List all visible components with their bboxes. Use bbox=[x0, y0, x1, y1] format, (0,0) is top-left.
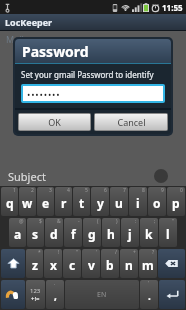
button[interactable]: " bbox=[63, 249, 81, 278]
staticText: +!= bbox=[31, 295, 40, 303]
button[interactable]: 123 bbox=[26, 280, 45, 309]
staticText: j bbox=[128, 226, 132, 242]
staticText: " bbox=[172, 218, 175, 225]
staticText: f bbox=[71, 226, 76, 242]
staticText: 1 bbox=[13, 187, 16, 194]
staticText: n bbox=[125, 257, 133, 273]
button[interactable]: Cancel bbox=[95, 114, 167, 130]
staticText: + bbox=[133, 249, 136, 256]
staticText: OK bbox=[48, 116, 61, 128]
button[interactable]: Enter bbox=[159, 280, 185, 309]
button[interactable]: + bbox=[120, 249, 138, 278]
staticText: LocKeeper bbox=[5, 16, 53, 28]
button[interactable]: 1 bbox=[1, 187, 18, 216]
button[interactable]: OK bbox=[19, 114, 90, 130]
button[interactable]: ( bbox=[83, 218, 101, 247]
staticText: 0 bbox=[180, 187, 183, 194]
button[interactable]: : bbox=[121, 218, 139, 247]
button[interactable]: 2 bbox=[19, 187, 36, 216]
staticText: @ bbox=[19, 218, 24, 225]
staticText: z bbox=[32, 257, 38, 273]
staticText: Mail bbox=[6, 33, 24, 45]
button[interactable]: $ bbox=[27, 218, 44, 247]
button[interactable]: 8 bbox=[129, 187, 147, 216]
staticText: a bbox=[14, 226, 22, 242]
staticText: 2 bbox=[31, 187, 34, 194]
staticText: , bbox=[54, 289, 57, 303]
staticText: . bbox=[148, 289, 151, 303]
staticText: v bbox=[88, 257, 95, 273]
staticText: ' bbox=[96, 249, 98, 256]
staticText: o bbox=[153, 195, 161, 211]
staticText: ) bbox=[116, 218, 118, 225]
button[interactable]: / bbox=[101, 249, 119, 278]
staticText: & bbox=[57, 218, 61, 225]
button[interactable]: 9 bbox=[148, 187, 166, 216]
staticText: : bbox=[135, 218, 137, 225]
button[interactable]: 5 bbox=[73, 187, 90, 216]
button[interactable]: ! bbox=[44, 249, 62, 278]
staticText: 8 bbox=[142, 187, 145, 194]
staticText: q bbox=[6, 195, 14, 211]
staticText: ? bbox=[152, 249, 155, 256]
staticText: Set your gmail Password to identify bbox=[21, 69, 154, 80]
staticText: EN bbox=[97, 290, 107, 300]
staticText: Subject bbox=[8, 169, 46, 184]
button[interactable]: . bbox=[46, 280, 64, 309]
staticText: 123 bbox=[30, 287, 41, 295]
staticText: l bbox=[166, 226, 170, 242]
staticText: 3 bbox=[49, 187, 52, 194]
button[interactable]: " bbox=[159, 218, 177, 247]
staticText: ' bbox=[148, 280, 150, 287]
button[interactable]: Swipe input bbox=[1, 280, 25, 309]
staticText: 6 bbox=[104, 187, 107, 194]
button[interactable]: 4 bbox=[55, 187, 72, 216]
staticText: " bbox=[76, 249, 79, 256]
staticText: 7 bbox=[123, 187, 126, 194]
button[interactable]: ? bbox=[139, 249, 157, 278]
staticText: - bbox=[78, 218, 80, 225]
button[interactable]: 0 bbox=[167, 187, 185, 216]
button[interactable]: Backspace bbox=[158, 249, 185, 278]
staticText: m bbox=[142, 257, 154, 273]
button[interactable]: •••••••• bbox=[23, 86, 163, 101]
button[interactable]: @ bbox=[9, 218, 26, 247]
staticText: x bbox=[50, 257, 57, 273]
staticText: 11:55 bbox=[162, 2, 183, 13]
staticText: y bbox=[97, 195, 104, 211]
staticText: Cancel bbox=[117, 116, 146, 128]
staticText: k bbox=[145, 226, 153, 242]
staticText: . bbox=[54, 280, 56, 287]
staticText: / bbox=[115, 249, 117, 256]
button[interactable]: ; bbox=[140, 218, 158, 247]
staticText: s bbox=[32, 226, 39, 242]
staticText: w bbox=[22, 195, 33, 211]
staticText: g bbox=[88, 226, 96, 242]
staticText: ( bbox=[97, 218, 99, 225]
staticText: b bbox=[106, 257, 114, 273]
button[interactable]: Space bbox=[65, 280, 139, 309]
staticText: Password bbox=[22, 42, 89, 61]
staticText: e bbox=[42, 195, 50, 211]
staticText: * bbox=[38, 249, 41, 256]
staticText: ; bbox=[154, 218, 156, 225]
button[interactable]: - bbox=[64, 218, 82, 247]
staticText: p bbox=[172, 195, 180, 211]
staticText: c bbox=[69, 257, 76, 273]
button[interactable]: 3 bbox=[37, 187, 54, 216]
button[interactable]: & bbox=[45, 218, 63, 247]
staticText: u bbox=[115, 195, 123, 211]
button[interactable]: ' bbox=[82, 249, 100, 278]
button[interactable]: ) bbox=[102, 218, 120, 247]
button[interactable]: ' bbox=[140, 280, 158, 309]
staticText: t bbox=[79, 195, 85, 211]
staticText: 4 bbox=[67, 187, 70, 194]
button[interactable]: Shift bbox=[1, 249, 25, 278]
staticText: 9 bbox=[161, 187, 164, 194]
button[interactable]: * bbox=[26, 249, 43, 278]
staticText: $ bbox=[39, 218, 42, 225]
staticText: i bbox=[136, 195, 140, 211]
button[interactable]: 7 bbox=[110, 187, 128, 216]
staticText: h bbox=[107, 226, 115, 242]
button[interactable]: 6 bbox=[91, 187, 109, 216]
